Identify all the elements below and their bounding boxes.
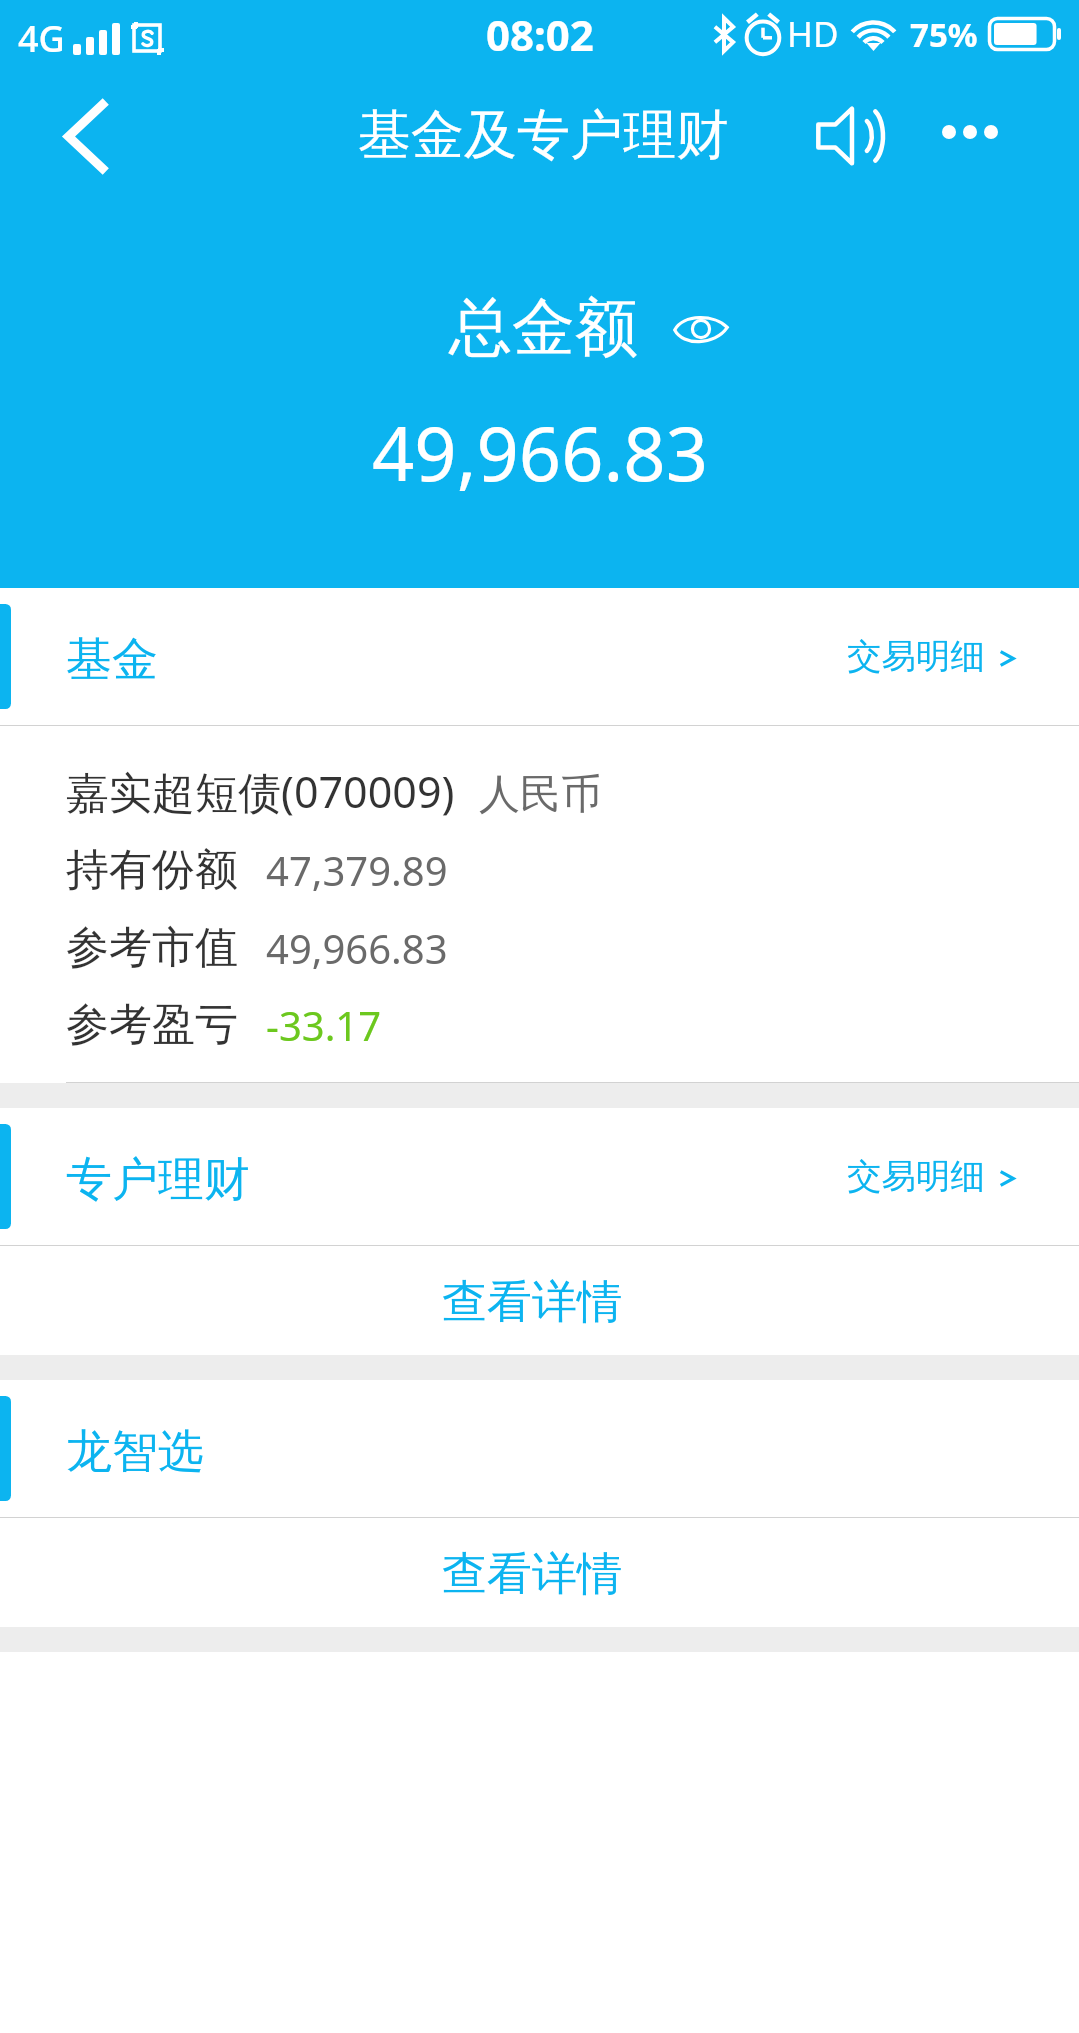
staticText: 4G (18, 14, 65, 63)
staticText: 75% (910, 12, 978, 57)
staticText: 持有份额 (66, 843, 238, 897)
button[interactable]: Toggle amount visibility (659, 307, 743, 353)
button[interactable]: 交易明细 (817, 1108, 1079, 1245)
staticText: 08:02 (486, 6, 594, 63)
staticText: 查看详情 (442, 1546, 622, 1603)
staticText: 49,966.83 (372, 402, 708, 503)
staticText: 嘉实超短债(070009) (66, 762, 455, 821)
staticText: 人民币 (479, 769, 602, 821)
staticText: 基金及专户理财 (358, 102, 729, 169)
button[interactable]: 交易明细 (817, 588, 1079, 725)
button[interactable]: Back (41, 92, 129, 180)
button[interactable]: 查看详情 (0, 1518, 1079, 1627)
staticText: 49,966.83 (266, 921, 448, 975)
staticText: 查看详情 (442, 1274, 622, 1331)
staticText: 龙智选 (66, 1423, 204, 1481)
staticText: 总金额 (449, 288, 638, 367)
button[interactable]: 查看详情 (0, 1246, 1079, 1355)
button[interactable]: More options (926, 88, 1014, 176)
staticText: 交易明细 (847, 635, 985, 678)
staticText: 参考市值 (66, 921, 238, 975)
button[interactable]: Sound (806, 92, 894, 180)
staticText: 基金 (66, 631, 158, 689)
staticText: HD (787, 10, 839, 58)
staticText: 专户理财 (66, 1151, 250, 1209)
staticText: 47,379.89 (266, 843, 448, 897)
staticText: 参考盈亏 (66, 998, 238, 1052)
staticText: 交易明细 (847, 1155, 985, 1198)
staticText: -33.17 (266, 998, 382, 1052)
